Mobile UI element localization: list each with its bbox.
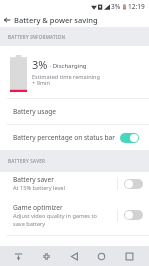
- staticText: Estimated time remaining + 9min: [32, 73, 100, 87]
- button[interactable]: Battery percentage on status bar: [0, 125, 149, 150]
- staticText: Game optimizer: [13, 203, 63, 212]
- button[interactable]: Game optimizer: [13, 203, 117, 228]
- staticText: At 15% battery level: [13, 184, 65, 192]
- staticText: Adjust video quality in games to save ba…: [13, 212, 97, 228]
- staticText: BATTERY SAVER: [8, 158, 46, 164]
- staticText: Battery & power saving: [14, 15, 98, 25]
- button[interactable]: Battery saver: [118, 172, 149, 195]
- button[interactable]: Home: [94, 246, 108, 266]
- button[interactable]: Toggle: [124, 179, 143, 189]
- staticText: Battery usage: [13, 107, 56, 116]
- button[interactable]: Battery saver: [13, 175, 117, 192]
- staticText: 3%: [111, 2, 121, 11]
- staticText: BATTERY INFORMATION: [8, 34, 66, 40]
- button[interactable]: Toggle: [124, 210, 143, 220]
- staticText: Battery saver: [13, 175, 54, 184]
- button[interactable]: Back: [67, 246, 81, 266]
- staticText: 3%: [32, 57, 48, 72]
- button[interactable]: Toggle: [120, 133, 139, 143]
- button[interactable]: Collapse: [39, 246, 53, 266]
- button[interactable]: Game optimizer: [118, 195, 149, 235]
- button[interactable]: Recent apps: [122, 246, 136, 266]
- button[interactable]: Hide navigation bar: [11, 246, 25, 266]
- staticText: 12:19: [128, 2, 145, 11]
- button[interactable]: Back: [0, 12, 14, 27]
- staticText: Battery percentage on status bar: [13, 133, 120, 142]
- button[interactable]: Battery usage: [0, 99, 149, 124]
- staticText: · Discharging: [48, 62, 87, 70]
